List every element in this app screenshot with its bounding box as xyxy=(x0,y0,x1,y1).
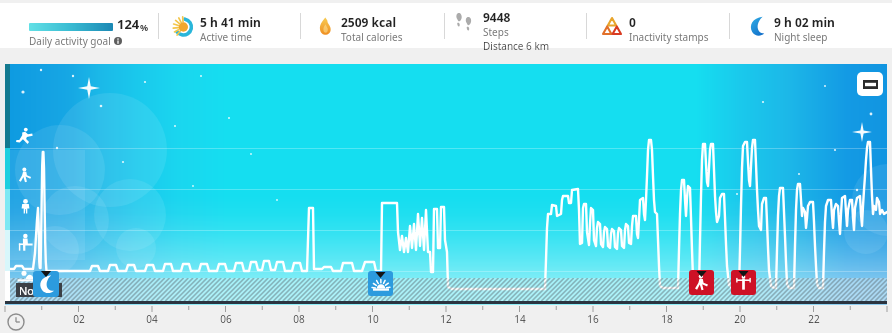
staticText: 124 xyxy=(117,15,140,33)
button[interactable]: Sleep period xyxy=(33,271,59,297)
staticText: 08 xyxy=(293,312,305,326)
button[interactable]: 5 h 41 min xyxy=(172,14,261,44)
staticText: 16 xyxy=(587,312,599,326)
staticText: 0 xyxy=(629,14,636,30)
staticText: 14 xyxy=(514,312,526,326)
staticText: Night sleep xyxy=(774,30,828,44)
staticText: 04 xyxy=(146,312,158,326)
staticText: 06 xyxy=(220,312,232,326)
staticText: Nov xyxy=(19,283,40,297)
button[interactable]: Sunrise xyxy=(368,271,393,296)
staticText: 18 xyxy=(661,312,673,326)
button[interactable]: Time scale xyxy=(7,313,25,331)
button[interactable]: 9 h 02 min xyxy=(746,14,835,44)
staticText: Daily activity goal xyxy=(29,34,111,48)
button[interactable]: 0 xyxy=(601,14,709,44)
staticText: 2509 kcal xyxy=(341,14,396,30)
staticText: 12 xyxy=(440,312,452,326)
staticText: 22 xyxy=(808,312,820,326)
button[interactable]: Walk xyxy=(689,270,714,295)
button[interactable]: 2509 kcal xyxy=(315,14,403,44)
staticText: 20 xyxy=(734,312,746,326)
staticText: 02 xyxy=(73,312,85,326)
staticText: Distance 6 km xyxy=(483,39,550,53)
button[interactable]: 9448 xyxy=(453,9,550,53)
button[interactable]: 124 xyxy=(29,15,149,48)
staticText: Active time xyxy=(200,30,252,44)
button[interactable]: Collapse chart xyxy=(857,72,883,96)
button[interactable]: Gym xyxy=(731,270,756,295)
staticText: Total calories xyxy=(341,30,403,44)
button[interactable]: Sunrise xyxy=(0,64,892,305)
staticText: Steps xyxy=(483,25,509,39)
staticText: 10 xyxy=(367,312,379,326)
staticText: Inactivity stamps xyxy=(629,30,709,44)
staticText: 5 h 41 min xyxy=(200,14,261,30)
staticText: % xyxy=(140,21,149,33)
staticText: 9448 xyxy=(483,9,511,25)
staticText: 9 h 02 min xyxy=(774,14,835,30)
